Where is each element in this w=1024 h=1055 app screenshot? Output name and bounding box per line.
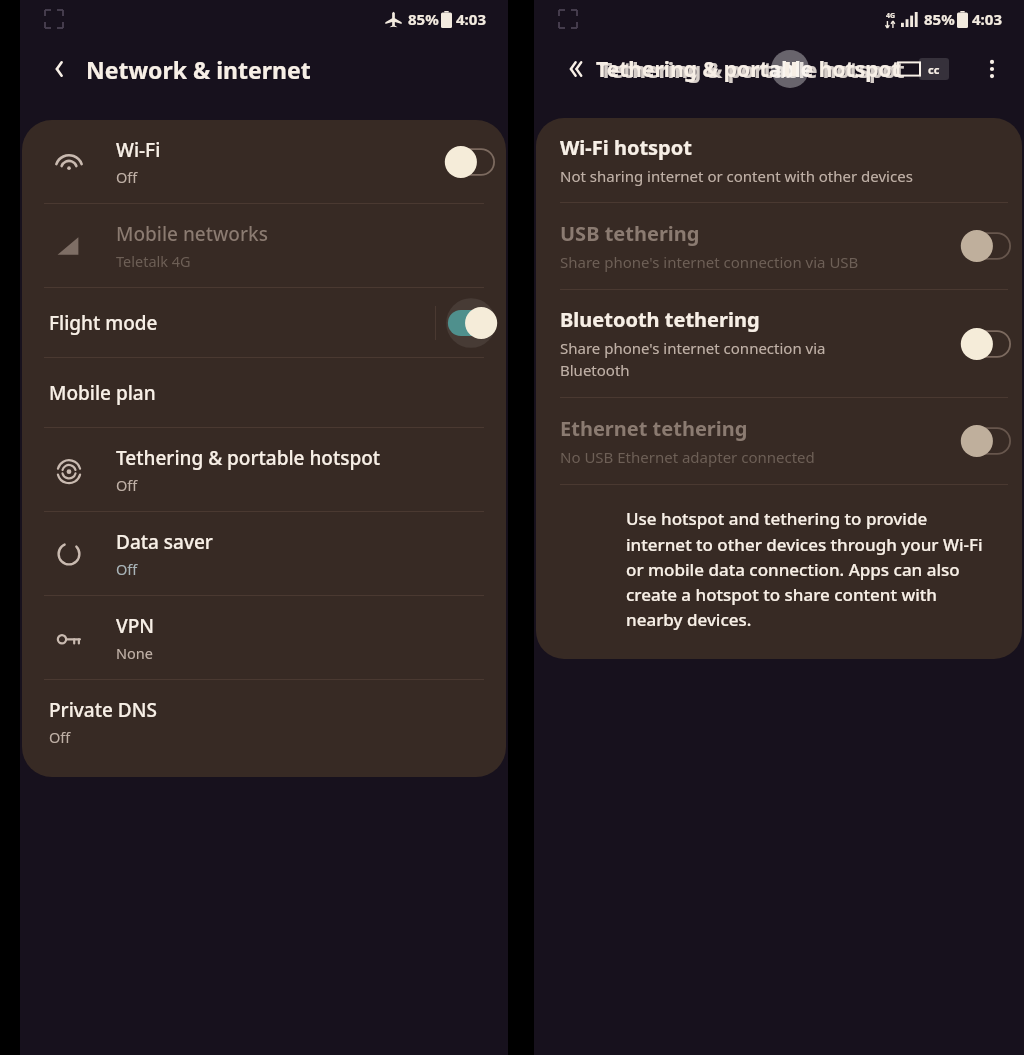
- staticText: 85%: [408, 9, 439, 29]
- button[interactable]: VPN: [22, 596, 506, 679]
- button[interactable]: Data saver: [22, 512, 506, 595]
- staticText: Tethering & portable hotspot: [596, 55, 901, 84]
- staticText: Teletalk 4G: [116, 251, 191, 271]
- button[interactable]: Bluetooth tethering: [536, 290, 1022, 397]
- button[interactable]: Flight mode: [22, 288, 506, 357]
- button[interactable]: Tethering & portable hotspot: [22, 428, 506, 511]
- staticText: 4:03: [972, 9, 1002, 29]
- staticText: No USB Ethernet adapter connected: [560, 447, 815, 467]
- staticText: 4:03: [456, 9, 486, 29]
- button[interactable]: [952, 317, 1022, 371]
- button[interactable]: Wi-Fi: [22, 120, 506, 203]
- button[interactable]: [952, 219, 1022, 273]
- staticText: Private DNS: [49, 697, 157, 723]
- button[interactable]: Mobile plan: [22, 358, 506, 427]
- button[interactable]: Private DNS: [22, 680, 506, 763]
- staticText: 4G: [886, 11, 896, 21]
- staticText: Share phone's internet connection via US…: [560, 252, 859, 272]
- staticText: Ethernet tethering: [560, 415, 748, 442]
- staticText: Wi-Fi hotspot: [560, 134, 692, 161]
- staticText: None: [116, 643, 153, 663]
- staticText: Off: [116, 559, 138, 579]
- button[interactable]: Back: [550, 47, 594, 91]
- button[interactable]: Captions: [919, 58, 949, 80]
- staticText: Off: [116, 475, 138, 495]
- staticText: Not sharing internet or content with oth…: [560, 166, 913, 186]
- staticText: Bluetooth tethering: [560, 306, 760, 333]
- button[interactable]: Back: [36, 47, 80, 91]
- staticText: Wi-Fi: [116, 137, 161, 163]
- button[interactable]: USB tethering: [536, 203, 1022, 289]
- button[interactable]: Wi-Fi hotspot: [536, 118, 1022, 202]
- staticText: Share phone's internet connection via Bl…: [560, 338, 826, 381]
- staticText: VPN: [116, 613, 155, 639]
- button[interactable]: [436, 296, 506, 350]
- button[interactable]: [436, 135, 506, 189]
- button[interactable]: More options: [974, 51, 1010, 87]
- staticText: Off: [49, 727, 71, 747]
- staticText: Network & internet: [86, 54, 311, 85]
- staticText: cc: [928, 62, 940, 77]
- staticText: Mobile plan: [49, 380, 156, 406]
- staticText: 85%: [924, 9, 955, 29]
- staticText: Mobile networks: [116, 221, 268, 247]
- button[interactable]: Ethernet tethering: [536, 398, 1022, 484]
- staticText: Flight mode: [49, 310, 158, 336]
- button[interactable]: Mobile networks: [22, 204, 506, 287]
- staticText: Tethering & portable hotspot: [116, 445, 381, 471]
- staticText: Off: [116, 167, 138, 187]
- staticText: Use hotspot and tethering to provide int…: [626, 507, 992, 631]
- staticText: Data saver: [116, 529, 213, 555]
- button[interactable]: Pause recording: [771, 50, 809, 88]
- staticText: USB tethering: [560, 220, 700, 247]
- staticText: Tethering & portable hotspot: [600, 56, 905, 85]
- button[interactable]: Stop recording: [898, 58, 920, 80]
- button[interactable]: [952, 414, 1022, 468]
